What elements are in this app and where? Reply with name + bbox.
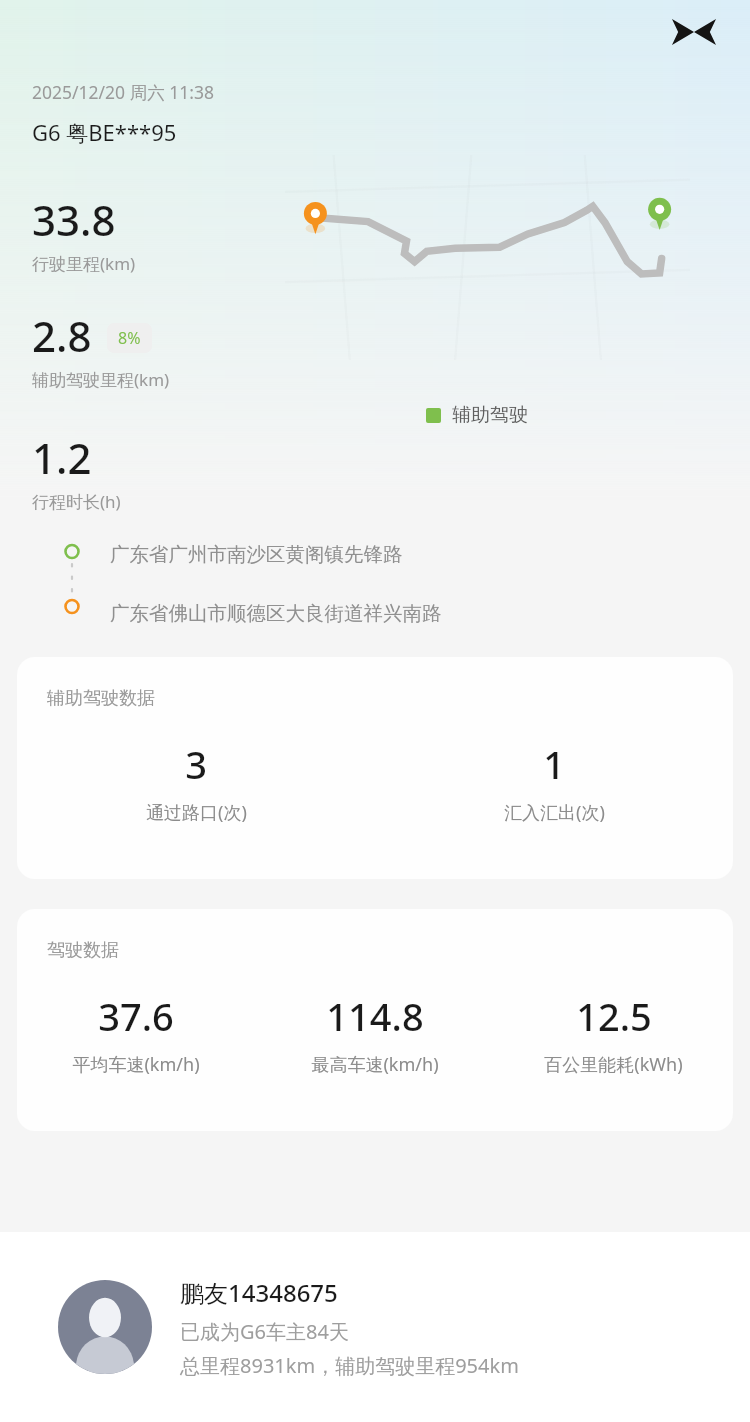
staticText: 33.8 [32,191,116,248]
button[interactable]: 鹏友14348675 [0,1232,750,1422]
staticText: 平均车速(km/h) [72,1052,200,1077]
staticText: 辅助驾驶数据 [47,687,155,710]
staticText: 1.2 [32,429,92,486]
staticText: 辅助驾驶里程(km) [32,368,170,391]
staticText: 最高车速(km/h) [311,1052,439,1077]
staticText: 通过路口(次) [146,800,247,825]
staticText: 2.8 [32,307,92,364]
staticText: 汇入汇出(次) [504,800,605,825]
staticText: 行程时长(h) [32,490,121,513]
button[interactable]: 辅助驾驶数据 [17,657,733,879]
staticText: G6 粤BE***95 [32,117,177,147]
staticText: 8% [118,327,141,349]
staticText: 已成为G6车主84天 [180,1318,349,1345]
staticText: 驾驶数据 [47,939,119,962]
staticText: 12.5 [576,990,652,1042]
staticText: 广东省佛山市顺德区大良街道祥兴南路 [110,601,442,626]
staticText: 百公里能耗(kWh) [544,1052,683,1077]
staticText: 3 [185,738,207,790]
button[interactable]: 驾驶数据 [17,909,733,1131]
staticText: 鹏友14348675 [180,1276,338,1309]
button[interactable]: XPeng [666,10,722,54]
staticText: 行驶里程(km) [32,252,136,275]
staticText: 1 [543,738,565,790]
staticText: 37.6 [98,990,174,1042]
staticText: 114.8 [326,990,424,1042]
staticText: 广东省广州市南沙区黄阁镇先锋路 [110,542,403,567]
staticText: 辅助驾驶 [452,403,528,427]
staticText: 总里程8931km，辅助驾驶里程954km [180,1352,519,1379]
button[interactable]: 辅助驾驶 [426,403,528,427]
staticText: 2025/12/20 周六 11:38 [32,80,214,104]
